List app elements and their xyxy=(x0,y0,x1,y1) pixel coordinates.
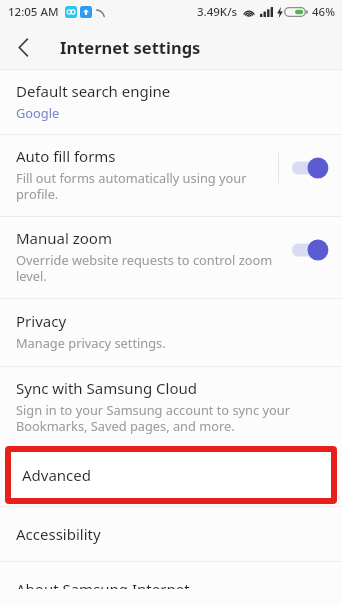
button[interactable]: Sync with Samsung Cloud xyxy=(0,367,342,444)
button[interactable]: Manual zoom xyxy=(0,217,342,298)
staticText: Override website requests to control zoo… xyxy=(16,251,273,285)
button[interactable]: Toggle setting xyxy=(292,239,333,261)
staticText: Manual zoom xyxy=(16,228,112,248)
button[interactable]: Back xyxy=(7,31,39,63)
button[interactable]: Toggle setting xyxy=(292,157,333,179)
button[interactable]: Auto fill forms xyxy=(0,135,342,216)
staticText: Internet settings xyxy=(60,36,201,58)
staticText: 12:05 AM xyxy=(8,4,59,20)
staticText: Default search engine xyxy=(16,81,171,101)
staticText: Advanced xyxy=(22,465,92,485)
staticText: 3.49K/s xyxy=(197,4,238,20)
staticText: Manage privacy settings. xyxy=(16,334,166,351)
button[interactable]: Accessibility xyxy=(0,507,342,561)
staticText: Sign in to your Samsung account to sync … xyxy=(16,401,290,435)
staticText: Google xyxy=(16,104,60,121)
button[interactable]: About Samsung Internet xyxy=(0,562,342,606)
staticText: Privacy xyxy=(16,311,67,331)
button[interactable]: Advanced xyxy=(5,446,337,504)
staticText: Accessibility xyxy=(16,524,101,544)
staticText: About Samsung Internet xyxy=(16,579,190,589)
staticText: 46% xyxy=(312,4,335,20)
staticText: Fill out forms automatically using your … xyxy=(16,169,247,203)
button[interactable]: Default search engine xyxy=(0,70,342,134)
staticText: Auto fill forms xyxy=(16,146,116,166)
button[interactable]: Privacy xyxy=(0,299,342,366)
staticText: Sync with Samsung Cloud xyxy=(16,378,197,398)
